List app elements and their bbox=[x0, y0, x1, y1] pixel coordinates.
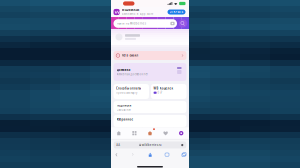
button[interactable]: Поиск по фото bbox=[179, 19, 187, 28]
button[interactable]: WILDBERRIES bbox=[111, 7, 189, 17]
button[interactable]: АА bbox=[114, 141, 186, 148]
button[interactable]: Нет в смайл bbox=[111, 51, 189, 60]
staticText: Нет в смайл bbox=[121, 54, 138, 57]
button[interactable]: Вкладки bbox=[179, 150, 188, 159]
button[interactable]: Назад bbox=[111, 150, 120, 159]
staticText: WB Кошелёк bbox=[154, 87, 174, 90]
staticText: Бесплатно в App Store bbox=[122, 12, 154, 16]
staticText: Доставки bbox=[116, 68, 130, 72]
button[interactable]: Каталог bbox=[127, 127, 142, 139]
staticText: Найти на Wildberries bbox=[117, 22, 146, 25]
button[interactable]: Главная bbox=[111, 127, 127, 139]
button[interactable]: Закладки bbox=[162, 150, 171, 159]
button[interactable]: Профиль bbox=[173, 127, 189, 139]
button[interactable]: Избранное bbox=[111, 115, 189, 127]
button[interactable]: Корзина bbox=[142, 127, 158, 139]
staticText: wildberries.ru bbox=[142, 143, 162, 147]
button[interactable]: Подписки bbox=[111, 101, 189, 113]
button[interactable]: Способы оплаты bbox=[113, 84, 149, 99]
staticText: Привязать карту bbox=[116, 91, 137, 94]
staticText: Подписки bbox=[116, 104, 131, 107]
staticText: Сейчас нет bbox=[116, 108, 130, 112]
staticText: 0 ₽ bbox=[157, 91, 162, 94]
staticText: АА bbox=[116, 143, 120, 147]
button[interactable]: Избранное bbox=[158, 127, 173, 139]
button[interactable]: Доставки bbox=[111, 63, 189, 81]
button[interactable]: Поделиться bbox=[145, 150, 154, 159]
staticText: Избранное bbox=[116, 118, 133, 121]
button[interactable]: WB Кошелёк bbox=[151, 84, 186, 99]
staticText: WILDBERRIES bbox=[122, 8, 139, 12]
staticText: ОТКРЫТЬ bbox=[169, 10, 183, 14]
staticText: Активных доставок нет bbox=[116, 72, 147, 76]
staticText: Способы оплаты bbox=[116, 87, 141, 90]
button[interactable]: Найти на Wildberries bbox=[113, 19, 177, 28]
